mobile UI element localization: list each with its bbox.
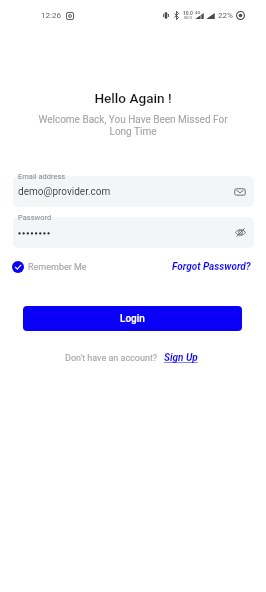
staticText: Forgot Password? — [172, 261, 251, 273]
button[interactable]: Login — [23, 306, 242, 331]
other: Show password — [235, 227, 246, 238]
staticText: 12:26 — [41, 11, 61, 20]
staticText: Don't have an account? — [65, 353, 158, 364]
staticText: 22% — [218, 11, 233, 20]
staticText: Login — [120, 313, 145, 325]
staticText: Sign Up — [164, 352, 198, 364]
staticText: 4G — [195, 10, 201, 15]
staticText: Hello Again ! — [0, 90, 266, 106]
button[interactable]: Forgot Password? — [172, 261, 251, 273]
staticText: Password — [18, 213, 52, 222]
staticText: demo@provider.com — [18, 186, 111, 198]
staticText: Email address — [18, 172, 66, 181]
button[interactable]: Email address — [13, 176, 254, 207]
button[interactable]: Remember Me — [12, 261, 87, 273]
staticText: Welcome Back, You Have Been Missed For L… — [36, 114, 230, 137]
staticText: Remember Me — [28, 262, 87, 273]
button[interactable]: Sign Up — [164, 352, 198, 364]
button[interactable]: Password — [13, 217, 254, 248]
staticText: KB/S — [184, 16, 193, 20]
staticText: 10.0 — [183, 10, 193, 16]
other: Email — [234, 187, 246, 197]
